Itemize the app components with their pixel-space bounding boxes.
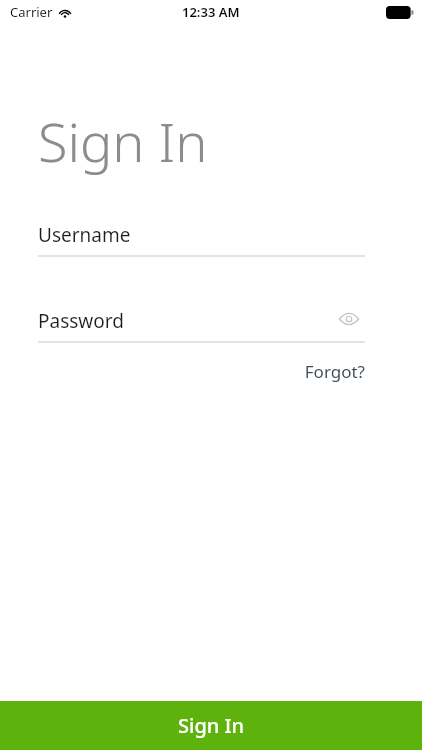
button[interactable]: Show password	[336, 306, 362, 332]
staticText: Username	[38, 222, 131, 248]
button[interactable]: Username	[38, 222, 365, 259]
staticText: Carrier	[10, 3, 53, 21]
button[interactable]: Sign In	[0, 701, 422, 750]
staticText: Forgot?	[304, 360, 365, 383]
staticText: Sign In	[178, 712, 245, 739]
staticText: 12:33 AM	[182, 3, 240, 21]
button[interactable]: Password	[38, 308, 365, 345]
staticText: Sign In	[38, 104, 208, 178]
staticText: Password	[38, 308, 124, 334]
button[interactable]: Forgot?	[300, 358, 365, 384]
